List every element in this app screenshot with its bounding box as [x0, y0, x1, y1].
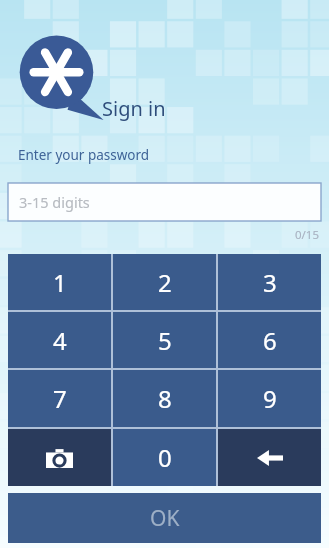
staticText: 7	[53, 382, 67, 415]
button[interactable]: 4	[8, 312, 111, 368]
staticText: OK	[150, 504, 180, 533]
staticText: 4	[53, 324, 67, 357]
staticText: 8	[158, 382, 172, 415]
staticText: Enter your password	[18, 146, 150, 164]
button[interactable]: 7	[8, 370, 111, 427]
button[interactable]: 5	[113, 312, 216, 368]
staticText: 1	[53, 266, 67, 299]
button[interactable]: 2	[113, 254, 216, 310]
button[interactable]: 3	[218, 254, 321, 310]
button[interactable]: 1	[8, 254, 111, 310]
button[interactable]: OK	[8, 493, 321, 543]
staticText: 5	[158, 324, 172, 357]
button[interactable]: 6	[218, 312, 321, 368]
staticText: 3	[263, 266, 277, 299]
button[interactable]: 9	[218, 370, 321, 427]
staticText: 3-15 digits	[19, 192, 90, 212]
staticText: 2	[158, 266, 172, 299]
staticText: Sign in	[102, 95, 166, 122]
button[interactable]: Camera	[8, 429, 111, 486]
staticText: 9	[263, 382, 277, 415]
staticText: 6	[263, 324, 277, 357]
button[interactable]: Backspace	[218, 429, 321, 486]
button[interactable]: 0	[113, 429, 216, 486]
staticText: 0/15	[295, 227, 320, 243]
button[interactable]: 3-15 digits	[8, 183, 321, 221]
staticText: 0	[158, 441, 172, 474]
button[interactable]: 8	[113, 370, 216, 427]
